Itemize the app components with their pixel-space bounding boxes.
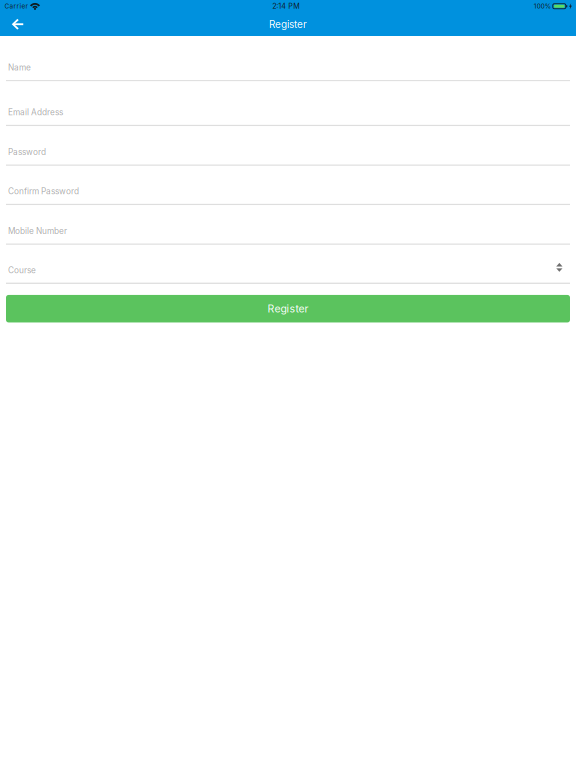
staticText: Register: [269, 18, 307, 30]
staticText: 2:14 PM: [272, 2, 300, 11]
button[interactable]: Email Address: [0, 81, 576, 126]
staticText: Course: [8, 265, 36, 275]
button[interactable]: Name: [0, 36, 576, 81]
staticText: 100%: [534, 2, 551, 10]
staticText: Carrier: [4, 2, 27, 10]
button[interactable]: Mobile Number: [0, 205, 576, 245]
button[interactable]: Register: [6, 295, 570, 322]
staticText: Password: [8, 147, 46, 157]
staticText: Confirm Password: [8, 186, 79, 196]
staticText: Mobile Number: [8, 226, 67, 236]
button[interactable]: Course: [0, 245, 576, 284]
button[interactable]: Password: [0, 126, 576, 166]
staticText: Register: [267, 302, 308, 315]
button[interactable]: Back: [0, 12, 35, 36]
button[interactable]: Confirm Password: [0, 166, 576, 205]
staticText: Email Address: [8, 107, 63, 117]
staticText: Name: [8, 62, 31, 72]
